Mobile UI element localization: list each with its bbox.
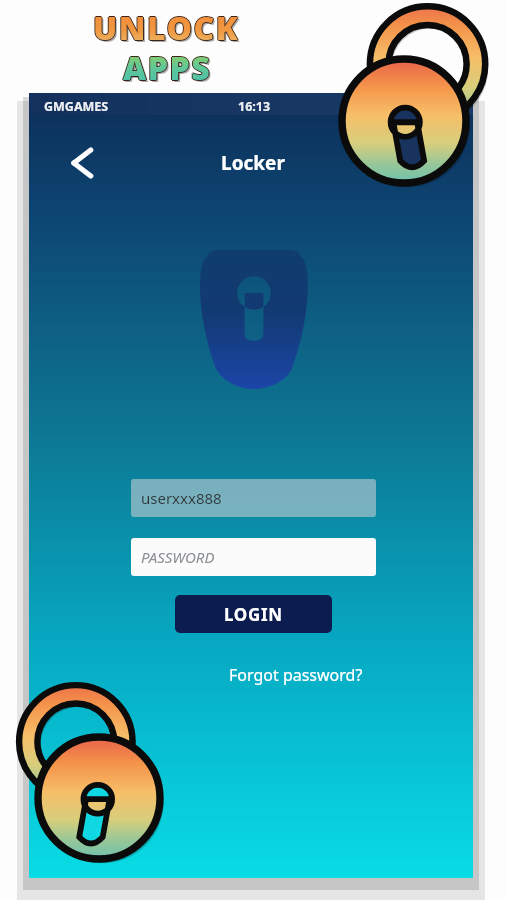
- staticText: userxxx888: [141, 488, 222, 508]
- staticText: APPS: [123, 46, 212, 90]
- staticText: LOGIN: [224, 603, 283, 626]
- staticText: UNLOCK: [95, 8, 242, 52]
- staticText: UNLOCK: [93, 5, 240, 49]
- staticText: APPS: [124, 46, 213, 90]
- staticText: APPS: [123, 47, 212, 91]
- button[interactable]: Forgot password?: [206, 660, 386, 690]
- button[interactable]: LOGIN: [175, 595, 332, 633]
- staticText: PASSWORD: [141, 547, 215, 567]
- staticText: Forgot password?: [229, 664, 363, 686]
- staticText: UNLOCK: [92, 6, 239, 50]
- staticText: UNLOCK: [93, 7, 240, 51]
- staticText: UNLOCK: [93, 6, 240, 50]
- button[interactable]: PASSWORD: [131, 538, 376, 576]
- staticText: GMGAMES: [44, 98, 109, 115]
- button[interactable]: userxxx888: [131, 479, 376, 517]
- staticText: 16:13: [238, 98, 271, 115]
- staticText: Locker: [221, 150, 285, 176]
- staticText: APPS: [125, 48, 214, 92]
- staticText: APPS: [123, 45, 212, 89]
- staticText: APPS: [122, 46, 211, 90]
- staticText: UNLOCK: [94, 6, 241, 50]
- button[interactable]: Back: [60, 141, 104, 185]
